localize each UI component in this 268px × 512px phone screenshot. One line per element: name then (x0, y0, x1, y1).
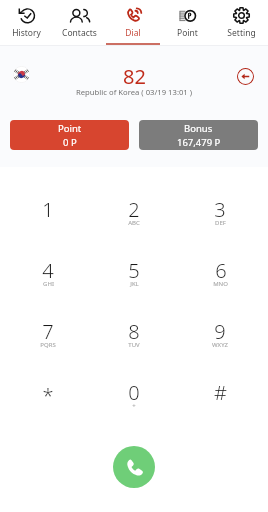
button[interactable]: # (177, 379, 263, 440)
staticText: Contacts (62, 27, 97, 39)
staticText: Point (177, 27, 198, 39)
staticText: 7 (42, 318, 54, 345)
button[interactable]: Bonus (139, 120, 258, 150)
staticText: History (12, 27, 41, 39)
staticText: Republic of Korea ( 03/19 13:01 ) (76, 87, 193, 97)
staticText: ABC (128, 219, 140, 227)
button[interactable]: 0 (91, 379, 177, 440)
button[interactable]: 3 (177, 196, 263, 257)
staticText: Setting (227, 27, 256, 39)
button[interactable]: 1 (5, 196, 91, 257)
button[interactable]: * (5, 379, 91, 440)
staticText: # (214, 379, 227, 406)
button[interactable]: 9 (177, 318, 263, 379)
button[interactable]: Point (160, 0, 214, 45)
staticText: 1 (42, 196, 54, 223)
staticText: 82 (123, 63, 146, 90)
staticText: 5 (128, 257, 140, 284)
button[interactable]: Backspace (237, 68, 254, 85)
staticText: MNO (213, 280, 228, 288)
staticText: 2 (128, 196, 140, 223)
button[interactable]: History (0, 0, 53, 45)
staticText: 9 (214, 318, 226, 345)
staticText: 0 P (63, 136, 77, 149)
staticText: WXYZ (212, 341, 228, 349)
staticText: 4 (42, 257, 54, 284)
staticText: 0 (128, 379, 140, 406)
staticText: TUV (128, 341, 140, 349)
button[interactable]: Dial (106, 0, 160, 45)
staticText: Dial (125, 27, 141, 39)
staticText: GHI (43, 280, 54, 288)
button[interactable]: Contacts (53, 0, 106, 45)
staticText: 3 (214, 196, 226, 223)
staticText: Point (58, 122, 82, 135)
button[interactable]: Point (10, 120, 129, 150)
button[interactable]: 4 (5, 257, 91, 318)
staticText: Bonus (184, 122, 213, 135)
button[interactable]: 5 (91, 257, 177, 318)
button[interactable]: Setting (214, 0, 268, 45)
staticText: 167,479 P (177, 136, 221, 149)
button[interactable]: Call (113, 446, 155, 488)
staticText: 6 (215, 257, 227, 284)
button[interactable]: 2 (91, 196, 177, 257)
staticText: JKL (130, 280, 139, 288)
button[interactable]: Select country code (13, 66, 30, 83)
button[interactable]: 6 (177, 257, 263, 318)
staticText: DEF (215, 219, 226, 227)
button[interactable]: 7 (5, 318, 91, 379)
staticText: + (132, 402, 136, 410)
button[interactable]: 8 (91, 318, 177, 379)
staticText: 8 (128, 318, 140, 345)
staticText: PQRS (40, 341, 56, 349)
staticText: * (42, 382, 54, 409)
